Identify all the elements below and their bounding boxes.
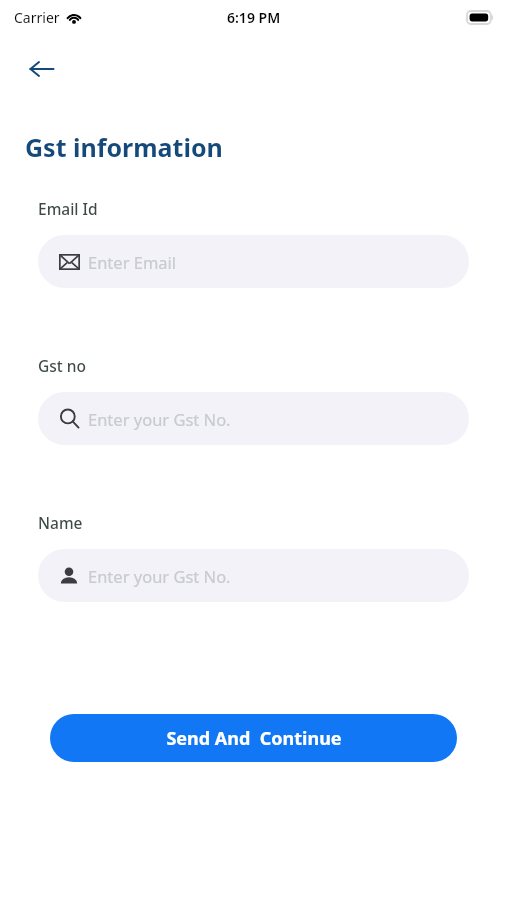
staticText: Email Id [38, 198, 98, 219]
staticText: Enter Email [88, 251, 177, 273]
staticText: Name [38, 512, 83, 533]
button[interactable]: Enter Email [38, 235, 469, 288]
staticText: Gst information [25, 130, 223, 164]
staticText: Gst no [38, 355, 86, 376]
staticText: Enter your Gst No. [88, 408, 231, 430]
button[interactable]: Send And Continue [50, 714, 457, 762]
button[interactable]: Back [20, 48, 62, 90]
button[interactable]: Enter your Gst No. [38, 549, 469, 602]
staticText: 6:19 PM [227, 8, 281, 27]
staticText: Carrier [14, 8, 60, 27]
button[interactable]: Enter your Gst No. [38, 392, 469, 445]
staticText: Send And Continue [166, 726, 342, 751]
staticText: Enter your Gst No. [88, 565, 231, 587]
